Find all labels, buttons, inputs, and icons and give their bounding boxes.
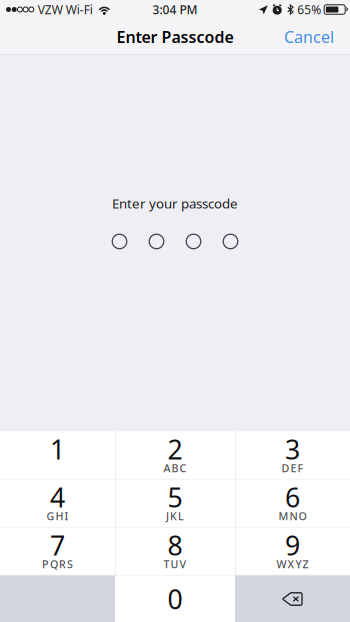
staticText: P Q R S xyxy=(42,557,73,571)
staticText: Enter your passcode xyxy=(112,194,238,212)
staticText: D E F xyxy=(281,461,303,475)
button[interactable]: 1 xyxy=(0,431,115,479)
staticText: J K L xyxy=(166,509,184,523)
staticText: 3:04 PM xyxy=(152,1,197,17)
staticText: Enter Passcode xyxy=(116,26,233,47)
staticText: 8 xyxy=(167,527,182,563)
staticText: A B C xyxy=(163,461,186,475)
staticText: T U V xyxy=(163,557,186,571)
staticText: G H I xyxy=(46,509,68,523)
staticText: 5 xyxy=(167,479,182,515)
staticText: 2 xyxy=(167,431,182,467)
button[interactable]: 3 xyxy=(235,431,350,479)
staticText: W X Y Z xyxy=(276,557,308,571)
staticText: 4 xyxy=(50,479,65,515)
button[interactable]: 4 xyxy=(0,479,115,527)
staticText: 9 xyxy=(285,527,300,563)
staticText: Cancel xyxy=(284,26,334,47)
button[interactable]: 6 xyxy=(235,479,350,527)
button[interactable]: Cancel xyxy=(268,19,350,54)
button[interactable]: 8 xyxy=(115,527,235,575)
staticText: VZW Wi-Fi xyxy=(38,1,93,17)
button[interactable]: 7 xyxy=(0,527,115,575)
button[interactable]: 0 xyxy=(115,575,235,622)
staticText: 65% xyxy=(297,1,321,17)
staticText: 0 xyxy=(167,581,182,617)
staticText: 3 xyxy=(285,431,300,467)
button[interactable]: 5 xyxy=(115,479,235,527)
button[interactable]: Delete xyxy=(235,575,350,622)
staticText: 6 xyxy=(285,479,300,515)
button[interactable]: 2 xyxy=(115,431,235,479)
button[interactable]: 9 xyxy=(235,527,350,575)
staticText: 1 xyxy=(50,431,65,467)
staticText: M N O xyxy=(278,509,306,523)
staticText: 7 xyxy=(50,527,65,563)
